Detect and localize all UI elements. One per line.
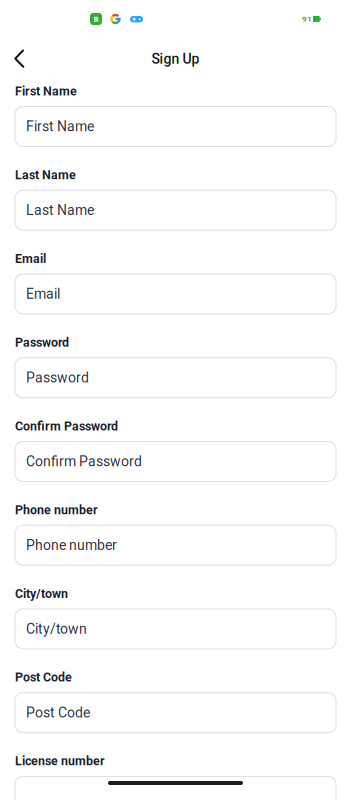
staticText: Sign Up (151, 51, 199, 67)
button[interactable]: Email (15, 274, 336, 314)
staticText: Email (26, 286, 60, 302)
button[interactable]: First Name (15, 106, 336, 146)
staticText: Password (15, 335, 69, 350)
staticText: Post Code (15, 670, 72, 685)
staticText: Confirm Password (15, 419, 118, 433)
staticText: Last Name (26, 202, 94, 218)
button[interactable]: City/town (15, 609, 336, 649)
staticText: Post Code (26, 704, 90, 721)
button[interactable]: Post Code (15, 693, 336, 733)
staticText: First Name (26, 118, 94, 135)
staticText: Phone number (15, 503, 98, 517)
staticText: City/town (15, 586, 68, 601)
staticText: B (93, 14, 98, 24)
staticText: Password (26, 369, 89, 386)
button[interactable]: Last Name (15, 190, 336, 230)
button[interactable] (15, 776, 336, 800)
staticText: Phone number (26, 537, 117, 553)
staticText: Last Name (15, 168, 76, 182)
button[interactable]: Confirm Password (15, 441, 336, 481)
staticText: First Name (15, 84, 77, 98)
staticText: Email (15, 251, 46, 266)
button[interactable]: Phone number (15, 525, 336, 565)
staticText: Confirm Password (26, 453, 142, 470)
staticText: License number (15, 754, 105, 768)
staticText: City/town (26, 621, 87, 637)
button[interactable]: Back (0, 38, 38, 79)
button[interactable]: Password (15, 358, 336, 398)
staticText: 91 (302, 14, 312, 24)
